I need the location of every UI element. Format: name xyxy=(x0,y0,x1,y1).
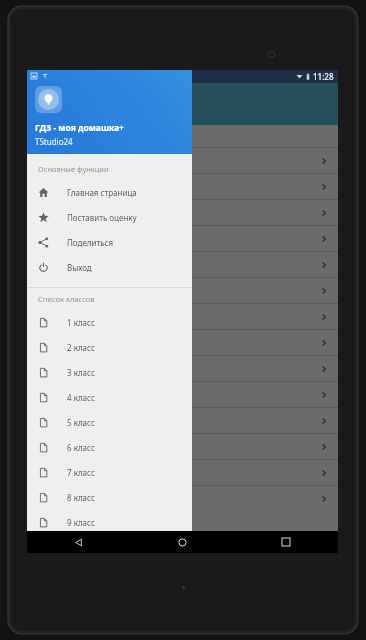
button[interactable]: 6 класс xyxy=(27,435,192,460)
button[interactable] xyxy=(27,226,338,251)
staticText: Главная страница xyxy=(67,187,137,198)
staticText: Основные функции xyxy=(38,164,109,174)
button[interactable] xyxy=(27,356,338,381)
button[interactable] xyxy=(27,278,338,303)
button[interactable]: 8 класс xyxy=(27,485,192,510)
button[interactable] xyxy=(27,252,338,277)
button[interactable]: 7 класс xyxy=(27,460,192,485)
staticText: 4 класс xyxy=(67,392,95,403)
button[interactable]: Back xyxy=(27,531,130,553)
staticText: Список классов xyxy=(38,294,95,304)
button[interactable] xyxy=(27,148,338,173)
button[interactable] xyxy=(27,486,338,511)
button[interactable]: 3 класс xyxy=(27,360,192,385)
staticText: Выход xyxy=(67,262,92,273)
button[interactable]: Поставить оценку xyxy=(27,205,192,230)
staticText: TStudio24 xyxy=(35,136,73,147)
staticText: 1 класс xyxy=(67,317,95,328)
button[interactable] xyxy=(27,408,338,433)
button[interactable]: Главная страница xyxy=(27,180,192,205)
button[interactable]: Поделиться xyxy=(27,230,192,255)
button[interactable] xyxy=(27,304,338,329)
button[interactable]: 5 класс xyxy=(27,410,192,435)
button[interactable] xyxy=(27,434,338,459)
staticText: 6 класс xyxy=(67,442,95,453)
button[interactable] xyxy=(27,460,338,485)
staticText: 9 класс xyxy=(67,517,95,528)
button[interactable]: 1 класс xyxy=(27,310,192,335)
staticText: Поставить оценку xyxy=(67,212,137,223)
button[interactable]: Home xyxy=(130,531,234,553)
button[interactable]: Выход xyxy=(27,255,192,280)
staticText: 8 класс xyxy=(67,492,95,503)
button[interactable]: 9 класс xyxy=(27,510,192,535)
button[interactable]: 4 класс xyxy=(27,385,192,410)
staticText: Поделиться xyxy=(67,237,114,248)
button[interactable]: 2 класс xyxy=(27,335,192,360)
staticText: Выберите предмет xyxy=(39,130,118,142)
staticText: 2 класс xyxy=(67,342,95,353)
button[interactable] xyxy=(27,200,338,225)
button[interactable]: Recent apps xyxy=(234,531,338,553)
staticText: 3 класс xyxy=(67,367,95,378)
button[interactable] xyxy=(27,330,338,355)
staticText: 7 класс xyxy=(67,467,95,478)
staticText: ГДЗ - моя домашка+ xyxy=(35,122,124,134)
button[interactable] xyxy=(27,174,338,199)
staticText: 11:28 xyxy=(313,71,334,82)
button[interactable] xyxy=(27,382,338,407)
staticText: 5 класс xyxy=(67,417,95,428)
